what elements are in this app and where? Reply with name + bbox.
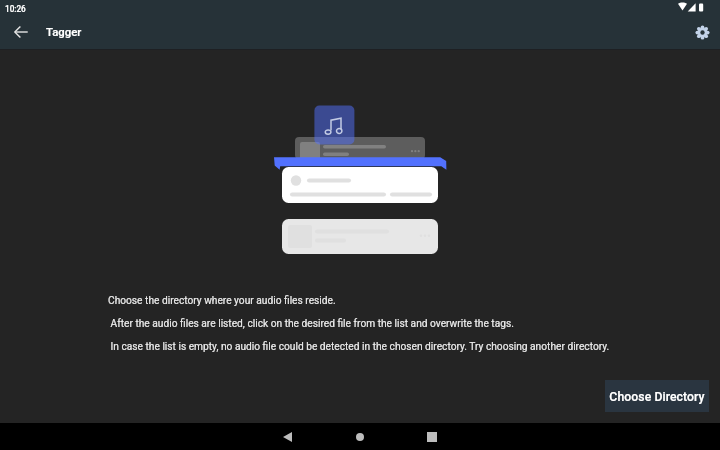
button[interactable]: Settings	[688, 21, 712, 45]
staticText: 10:26	[5, 4, 26, 14]
button[interactable]: Home	[340, 423, 380, 450]
staticText: Tagger	[46, 25, 82, 38]
staticText: Choose Directory	[609, 390, 705, 404]
button[interactable]: Back	[9, 21, 33, 45]
button[interactable]: Choose Directory	[605, 380, 709, 412]
staticText: In case the list is empty, no audio file…	[108, 341, 610, 353]
staticText: After the audio files are listed, click …	[108, 318, 514, 330]
button[interactable]: Recents	[412, 423, 452, 450]
staticText: Choose the directory where your audio fi…	[108, 295, 336, 307]
button[interactable]: Back	[267, 423, 307, 450]
